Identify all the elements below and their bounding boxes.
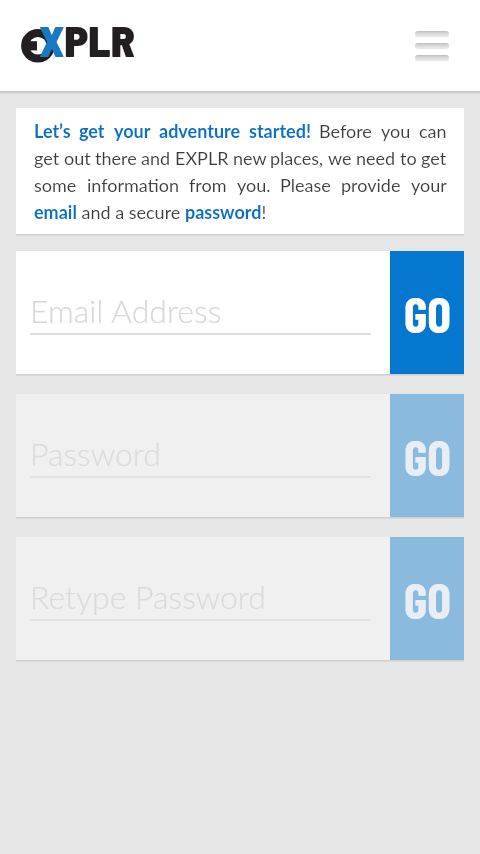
button[interactable]: GO	[390, 394, 464, 517]
staticText: places,	[270, 147, 324, 169]
staticText: your	[114, 120, 151, 142]
staticText: GO	[404, 426, 451, 486]
staticText: Before	[319, 120, 372, 142]
staticText: information	[87, 174, 179, 196]
staticText: started!	[249, 120, 311, 142]
button[interactable]: GO	[390, 537, 464, 660]
staticText: need	[356, 147, 396, 169]
staticText: can	[419, 120, 447, 142]
staticText: we	[328, 147, 352, 169]
staticText: Retype Password	[30, 577, 266, 615]
button[interactable]	[415, 31, 449, 61]
staticText: get	[34, 147, 60, 169]
staticText: Please	[280, 174, 331, 196]
staticText: you	[381, 120, 411, 142]
staticText: provide	[341, 174, 401, 196]
staticText: XPLR	[39, 13, 136, 66]
button[interactable]: Retype Password	[16, 537, 390, 660]
staticText: from	[189, 174, 227, 196]
button[interactable]: Email Address	[16, 251, 390, 374]
staticText: get	[79, 120, 105, 142]
staticText: email and a secure password!	[34, 201, 267, 223]
staticText: Email Address	[30, 291, 222, 329]
staticText: GO	[404, 283, 451, 343]
staticText: GO	[404, 569, 451, 629]
staticText: EXPLR	[175, 147, 229, 169]
staticText: and	[141, 147, 171, 169]
button[interactable]: GO	[390, 251, 464, 374]
staticText: Password	[30, 434, 161, 472]
staticText: your	[411, 174, 447, 196]
staticText: to	[400, 147, 417, 169]
staticText: you.	[237, 174, 271, 196]
staticText: there	[95, 147, 137, 169]
staticText: new	[233, 147, 267, 169]
staticText: some	[34, 174, 77, 196]
staticText: out	[64, 147, 91, 169]
staticText: adventure	[159, 120, 241, 142]
staticText: get	[421, 147, 447, 169]
staticText: Let’s	[34, 120, 71, 142]
